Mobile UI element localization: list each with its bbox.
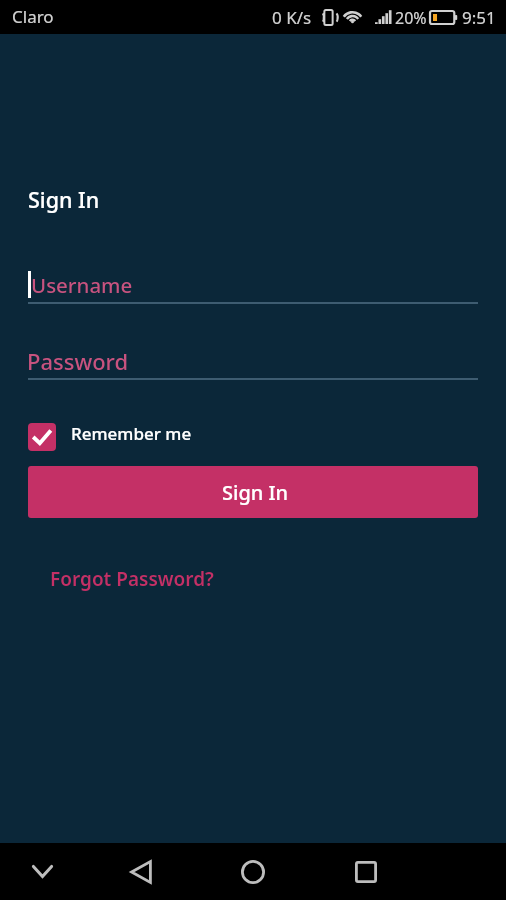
staticText: 0 K/s xyxy=(272,6,312,29)
button[interactable]: Username xyxy=(0,264,506,304)
staticText: 9:51 xyxy=(462,6,496,29)
button[interactable]: Remember me xyxy=(28,419,192,447)
staticText: Sign In xyxy=(28,185,100,214)
button[interactable]: Sign In xyxy=(28,466,478,518)
staticText: Password xyxy=(27,346,129,376)
staticText: Claro xyxy=(12,5,54,28)
button[interactable]: Forgot Password? xyxy=(27,558,237,600)
button[interactable]: Home xyxy=(225,843,281,900)
button[interactable]: Password xyxy=(0,340,506,380)
staticText: Username xyxy=(31,271,133,299)
staticText: 20% xyxy=(395,7,427,29)
staticText: Remember me xyxy=(71,422,192,445)
button[interactable]: Back xyxy=(113,843,169,900)
staticText: Sign In xyxy=(222,479,289,506)
button[interactable]: Recent apps xyxy=(338,843,394,900)
button[interactable]: Hide keyboard xyxy=(14,843,70,900)
